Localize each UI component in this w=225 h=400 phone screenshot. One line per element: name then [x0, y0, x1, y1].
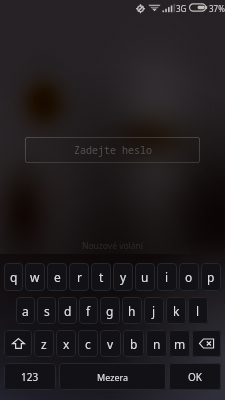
button[interactable]: p: [201, 263, 221, 291]
staticText: 3G: [176, 3, 187, 14]
button[interactable]: Shift: [4, 330, 32, 357]
button[interactable]: f: [79, 297, 98, 324]
staticText: w: [30, 269, 40, 285]
button[interactable]: Zadejte heslo: [25, 137, 200, 163]
button[interactable]: z: [34, 330, 54, 357]
button[interactable]: t: [91, 263, 111, 291]
staticText: q: [10, 269, 18, 285]
staticText: u: [141, 269, 149, 285]
staticText: e: [54, 269, 61, 285]
staticText: n: [153, 336, 161, 352]
button[interactable]: q: [4, 263, 23, 291]
staticText: s: [44, 303, 50, 319]
staticText: t: [99, 269, 104, 285]
staticText: v: [107, 336, 114, 352]
staticText: h: [128, 303, 136, 319]
button[interactable]: 123: [4, 363, 56, 390]
staticText: f: [86, 303, 91, 319]
staticText: Mezera: [97, 371, 129, 383]
staticText: g: [106, 303, 114, 319]
button[interactable]: s: [37, 297, 56, 324]
staticText: o: [185, 269, 193, 285]
staticText: c: [85, 336, 91, 352]
staticText: x: [63, 336, 70, 352]
staticText: b: [130, 336, 138, 352]
button[interactable]: h: [122, 297, 142, 324]
staticText: p: [207, 269, 215, 285]
button[interactable]: OK: [169, 363, 221, 390]
staticText: d: [64, 303, 72, 319]
button[interactable]: j: [144, 297, 164, 324]
staticText: 123: [21, 370, 39, 384]
button[interactable]: c: [78, 330, 98, 357]
staticText: m: [174, 336, 186, 352]
button[interactable]: l: [188, 297, 208, 324]
button[interactable]: v: [100, 330, 121, 357]
button[interactable]: d: [58, 297, 77, 324]
button[interactable]: i: [157, 263, 177, 291]
staticText: j: [152, 303, 156, 319]
button[interactable]: y: [113, 263, 133, 291]
staticText: y: [120, 269, 127, 285]
button[interactable]: Mezera: [59, 363, 166, 390]
button[interactable]: Backspace: [192, 330, 221, 357]
staticText: OK: [188, 370, 202, 384]
staticText: r: [77, 269, 82, 285]
staticText: 37%: [209, 3, 225, 14]
button[interactable]: e: [47, 263, 67, 291]
button[interactable]: a: [16, 297, 35, 324]
button[interactable]: g: [100, 297, 120, 324]
staticText: l: [196, 303, 200, 319]
button[interactable]: k: [166, 297, 186, 324]
button[interactable]: Nouzové volání: [76, 238, 150, 254]
button[interactable]: m: [169, 330, 190, 357]
staticText: z: [41, 336, 47, 352]
staticText: a: [22, 303, 29, 319]
staticText: Zadejte heslo: [74, 143, 152, 157]
button[interactable]: r: [69, 263, 89, 291]
button[interactable]: n: [146, 330, 167, 357]
button[interactable]: o: [179, 263, 199, 291]
button[interactable]: u: [135, 263, 155, 291]
staticText: i: [165, 269, 169, 285]
staticText: k: [173, 303, 180, 319]
button[interactable]: x: [56, 330, 76, 357]
button[interactable]: b: [123, 330, 144, 357]
button[interactable]: w: [25, 263, 45, 291]
